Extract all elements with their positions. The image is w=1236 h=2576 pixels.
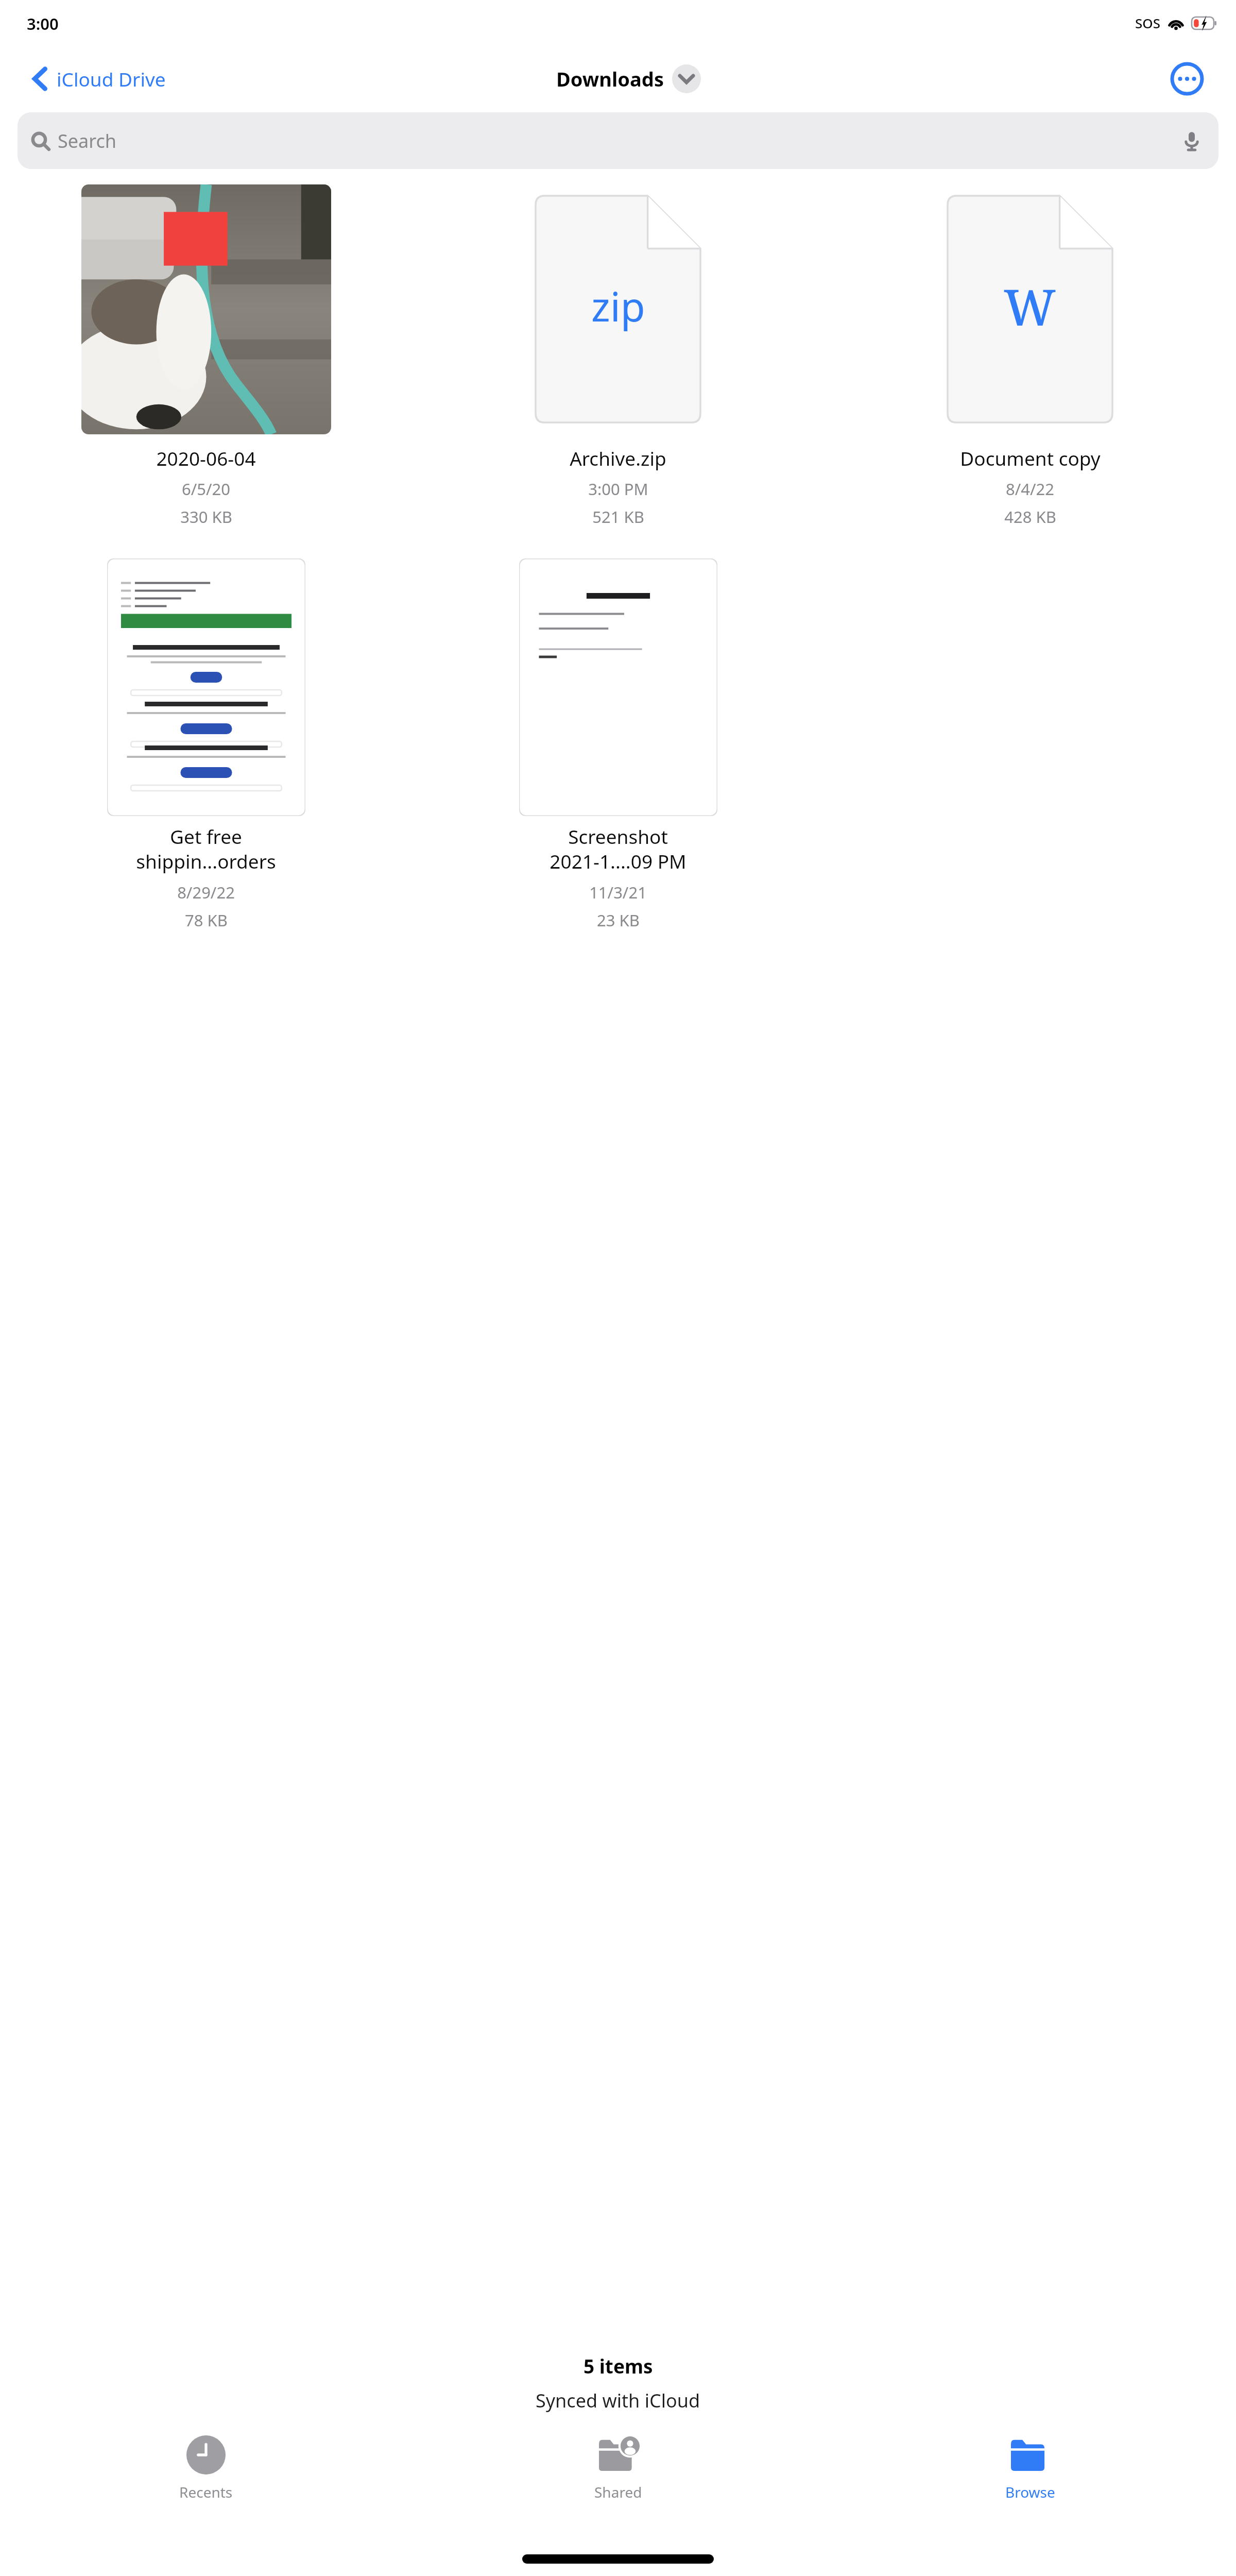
button[interactable]: Screenshot 2021-1....09 PM <box>412 558 824 931</box>
staticText: Downloads <box>556 65 664 92</box>
staticText: 8/29/22 <box>177 882 235 903</box>
staticText: Synced with iCloud <box>536 2388 700 2413</box>
button[interactable]: Search <box>18 112 1218 169</box>
staticText: Get free shippin...orders <box>136 823 276 874</box>
staticText: W <box>1004 273 1056 340</box>
staticText: Browse <box>1005 2482 1055 2502</box>
staticText: 6/5/20 <box>182 478 230 500</box>
button[interactable]: 2020-06-04 <box>0 180 412 528</box>
staticText: 11/3/21 <box>589 882 647 903</box>
button[interactable]: Folder options <box>672 64 701 93</box>
staticText: 428 KB <box>1004 506 1056 528</box>
staticText: 2020-06-04 <box>156 445 256 471</box>
staticText: SOS <box>1135 14 1160 32</box>
button[interactable]: Get free shippin...orders <box>0 558 412 931</box>
button[interactable]: Recents <box>0 2427 412 2502</box>
staticText: Search <box>58 128 116 154</box>
staticText: iCloud Drive <box>57 66 166 92</box>
staticText: 8/4/22 <box>1006 478 1054 500</box>
staticText: Shared <box>594 2482 642 2502</box>
button[interactable]: iCloud Drive <box>32 66 166 92</box>
staticText: Recents <box>179 2482 233 2502</box>
button[interactable]: W <box>824 180 1236 528</box>
staticText: 3:00 <box>27 13 59 35</box>
staticText: 521 KB <box>592 506 644 528</box>
staticText: Document copy <box>960 445 1101 471</box>
staticText: 3:00 PM <box>588 478 648 500</box>
staticText: Screenshot 2021-1....09 PM <box>550 823 686 874</box>
staticText: 23 KB <box>597 909 640 931</box>
button[interactable]: More options <box>1167 59 1207 99</box>
staticText: 5 items <box>583 2353 653 2379</box>
button[interactable]: Shared <box>412 2427 824 2502</box>
button[interactable]: zip <box>412 180 824 528</box>
staticText: zip <box>591 279 645 333</box>
button[interactable]: Browse <box>824 2427 1236 2502</box>
staticText: 330 KB <box>180 506 232 528</box>
staticText: 78 KB <box>185 909 228 931</box>
staticText: Archive.zip <box>570 445 666 471</box>
button[interactable]: Voice search <box>1178 127 1205 154</box>
